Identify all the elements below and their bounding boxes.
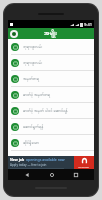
button[interactable]: အမှတ်တရ [8, 71, 94, 86]
staticText: ဓာတ်ပုံ အမှတ်တရ [23, 92, 51, 98]
button[interactable]: ဘုရားဖူးလမ်း [8, 39, 94, 54]
staticText: 9:41 [84, 22, 92, 27]
button[interactable]: New job [8, 156, 94, 169]
button[interactable]: ဆောင်ရွက်ရန် [8, 119, 94, 134]
staticText: Apply today — free to join [10, 163, 47, 167]
staticText: ဓာတ်ပုံ အမှတ် ပါဝင် ဆောင်ရန် [23, 108, 68, 114]
staticText: ဘုရားဖူးလမ်း [23, 44, 43, 50]
button[interactable]: Recent apps [70, 169, 81, 180]
staticText: ဆိုင်ရှိသော [23, 140, 39, 146]
button[interactable]: ဓာတ်ပုံ အမှတ် ပါဝင် ဆောင်ရန် [8, 103, 94, 118]
button[interactable]: Back [21, 169, 32, 180]
button[interactable]: Home [46, 169, 57, 180]
staticText: ဘုရားဖူးလမ်း [23, 60, 43, 66]
button[interactable]: ဓာတ်ပုံ အမှတ်တရ [8, 87, 94, 102]
button[interactable]: ဆိုင်ရှိသော [8, 135, 94, 150]
staticText: ဆောင်ရွက်ရန် [23, 124, 44, 130]
staticText: New job [10, 157, 25, 162]
staticText: အမျိုး [44, 29, 58, 38]
button[interactable]: Open ad [74, 156, 94, 169]
staticText: Advertise [78, 165, 90, 168]
button[interactable]: ဘုရားဖူးလမ်း [8, 55, 94, 70]
staticText: openings available now [26, 157, 65, 162]
staticText: အမှတ်တရ [23, 76, 40, 82]
button[interactable]: Menu [10, 30, 18, 38]
